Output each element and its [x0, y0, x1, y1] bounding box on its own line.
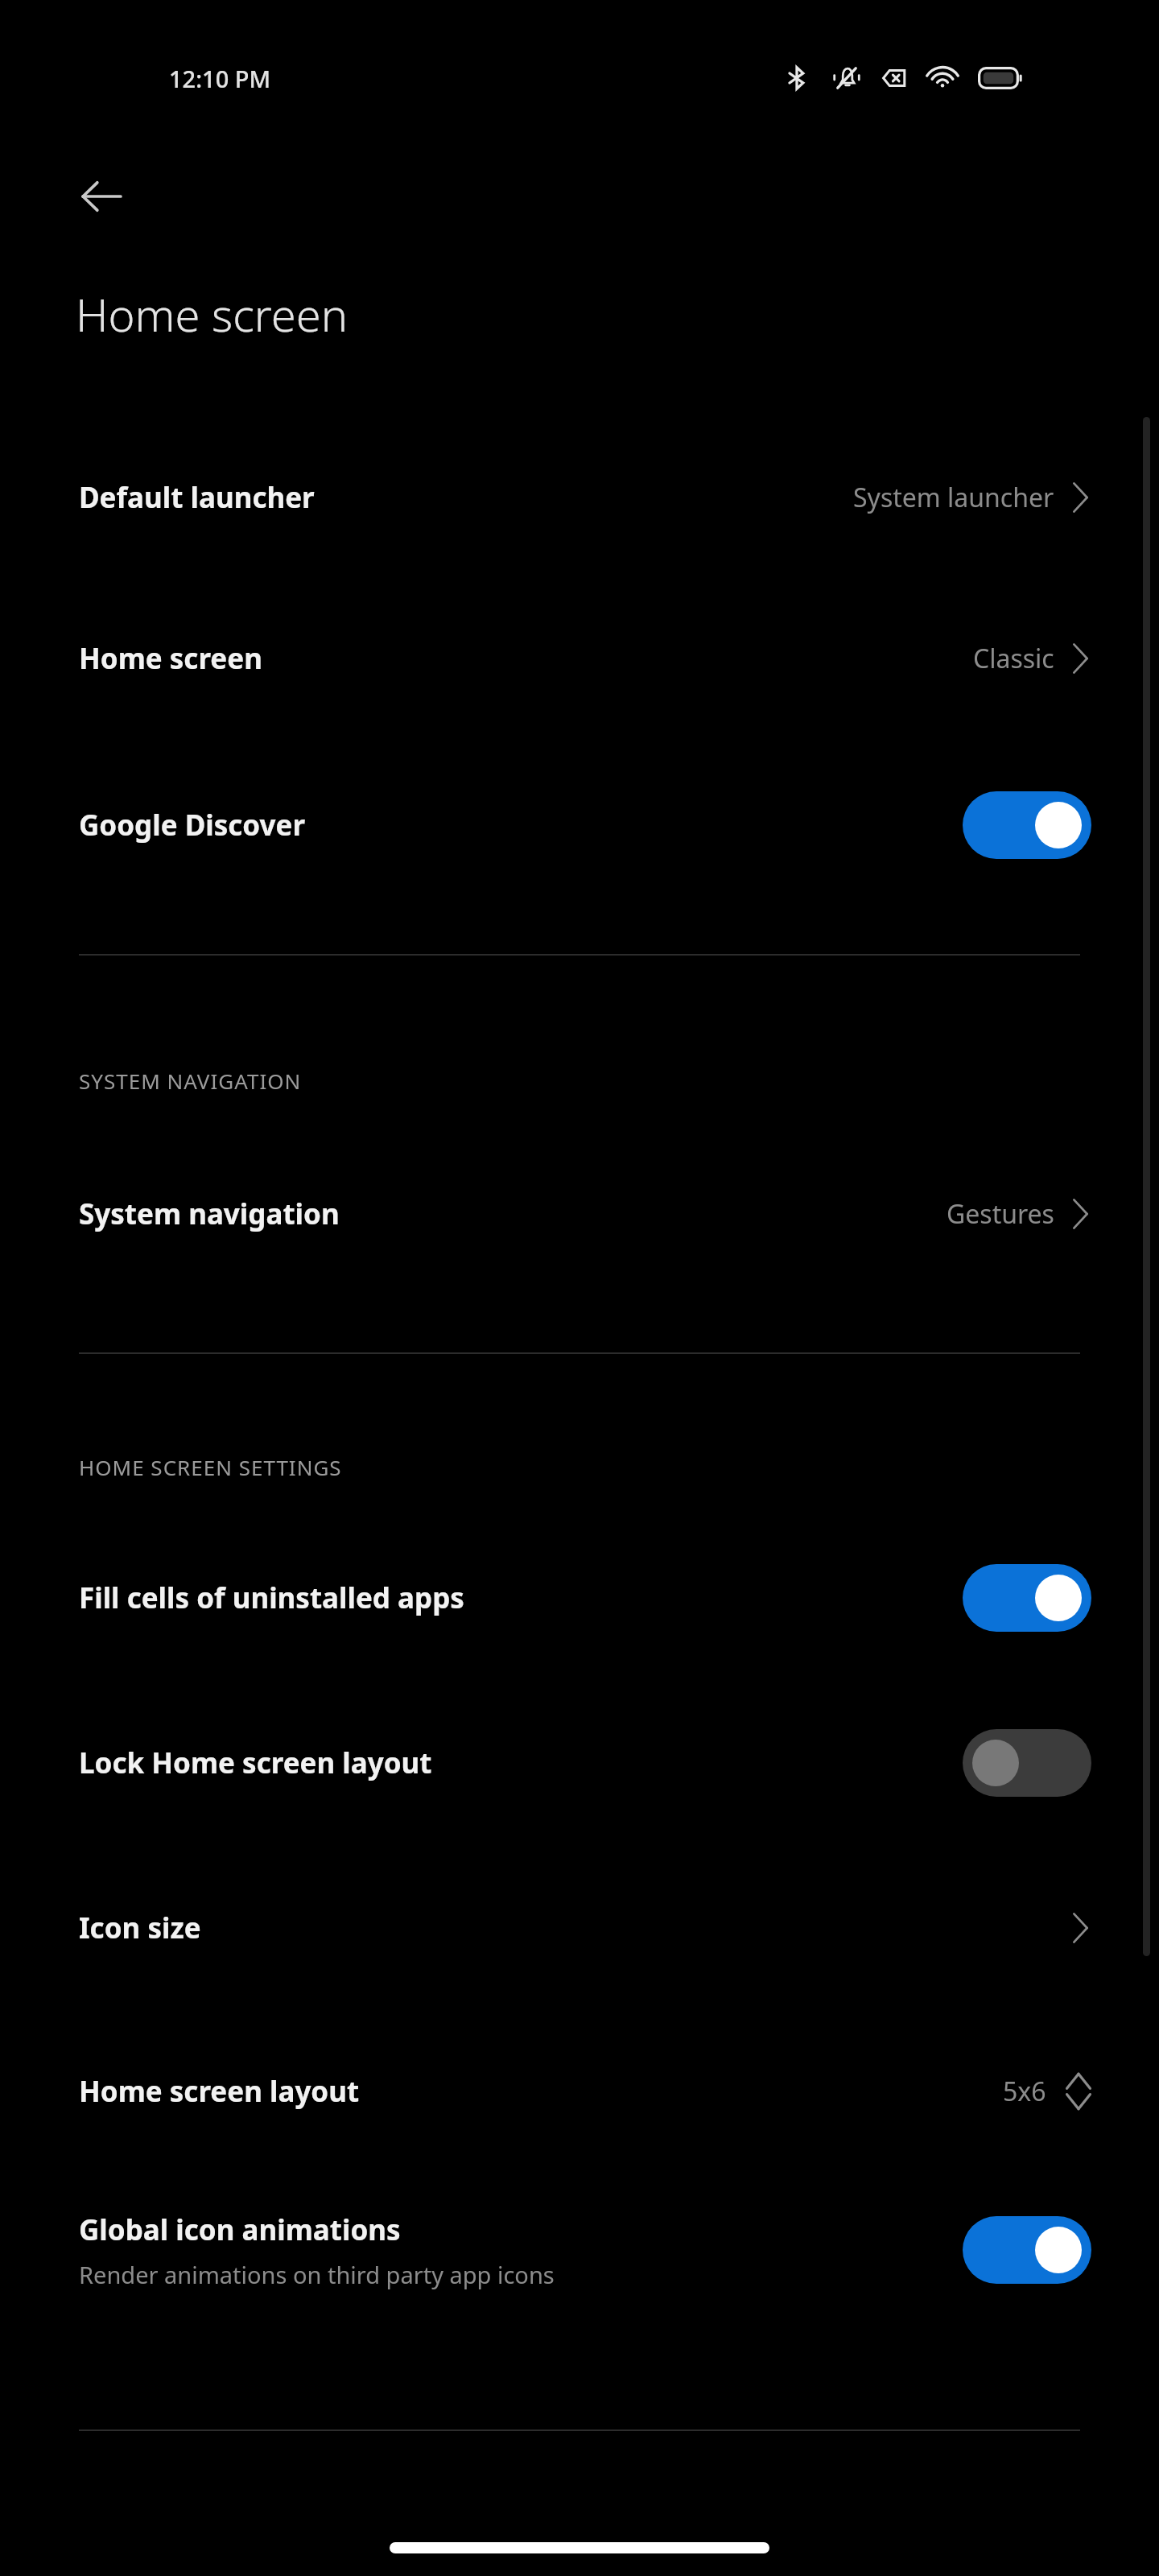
- staticText: Fill cells of uninstalled apps: [79, 1579, 464, 1617]
- staticText: Home screen layout: [79, 2072, 360, 2111]
- button[interactable]: Lock Home screen layout: [0, 1682, 1159, 1843]
- other: No SIM card: [881, 65, 907, 91]
- button[interactable]: Icon size: [0, 1847, 1159, 2008]
- other: Battery 90 percent: [978, 67, 1023, 89]
- staticText: System navigation: [79, 1195, 340, 1233]
- staticText: 12:10 PM: [169, 63, 271, 94]
- button[interactable]: Home screen layout: [0, 2011, 1159, 2172]
- staticText: Global icon animations: [79, 2211, 401, 2249]
- staticText: Default launcher: [79, 478, 315, 517]
- other: Wi-Fi: [930, 65, 955, 91]
- button[interactable]: Default launcher: [0, 417, 1159, 578]
- other: Ringer muted: [833, 64, 860, 92]
- staticText: Render animations on third party app ico…: [79, 2259, 555, 2290]
- button[interactable]: Home screen: [0, 578, 1159, 739]
- staticText: Home screen: [76, 283, 348, 345]
- button[interactable]: Fill cells of uninstalled apps: [0, 1517, 1159, 1678]
- button[interactable]: Lock Home screen layout off: [963, 1729, 1091, 1797]
- staticText: Classic: [973, 641, 1054, 676]
- button[interactable]: Google Discover on: [963, 791, 1091, 859]
- button[interactable]: Back: [63, 158, 140, 235]
- other: Bluetooth: [785, 66, 809, 90]
- button[interactable]: Google Discover: [0, 745, 1159, 906]
- staticText: Home screen: [79, 639, 262, 678]
- staticText: System launcher: [853, 480, 1054, 515]
- staticText: Lock Home screen layout: [79, 1744, 432, 1782]
- staticText: HOME SCREEN SETTINGS: [79, 1453, 342, 1481]
- button[interactable]: Fill cells of uninstalled apps on: [963, 1564, 1091, 1632]
- staticText: Google Discover: [79, 806, 306, 844]
- staticText: Icon size: [79, 1909, 201, 1947]
- button[interactable]: Global icon animations: [0, 2169, 1159, 2330]
- button[interactable]: System navigation: [0, 1133, 1159, 1294]
- staticText: SYSTEM NAVIGATION: [79, 1067, 302, 1095]
- staticText: Gestures: [947, 1196, 1054, 1232]
- staticText: 5x6: [1003, 2074, 1046, 2109]
- button[interactable]: Global icon animations on: [963, 2216, 1091, 2284]
